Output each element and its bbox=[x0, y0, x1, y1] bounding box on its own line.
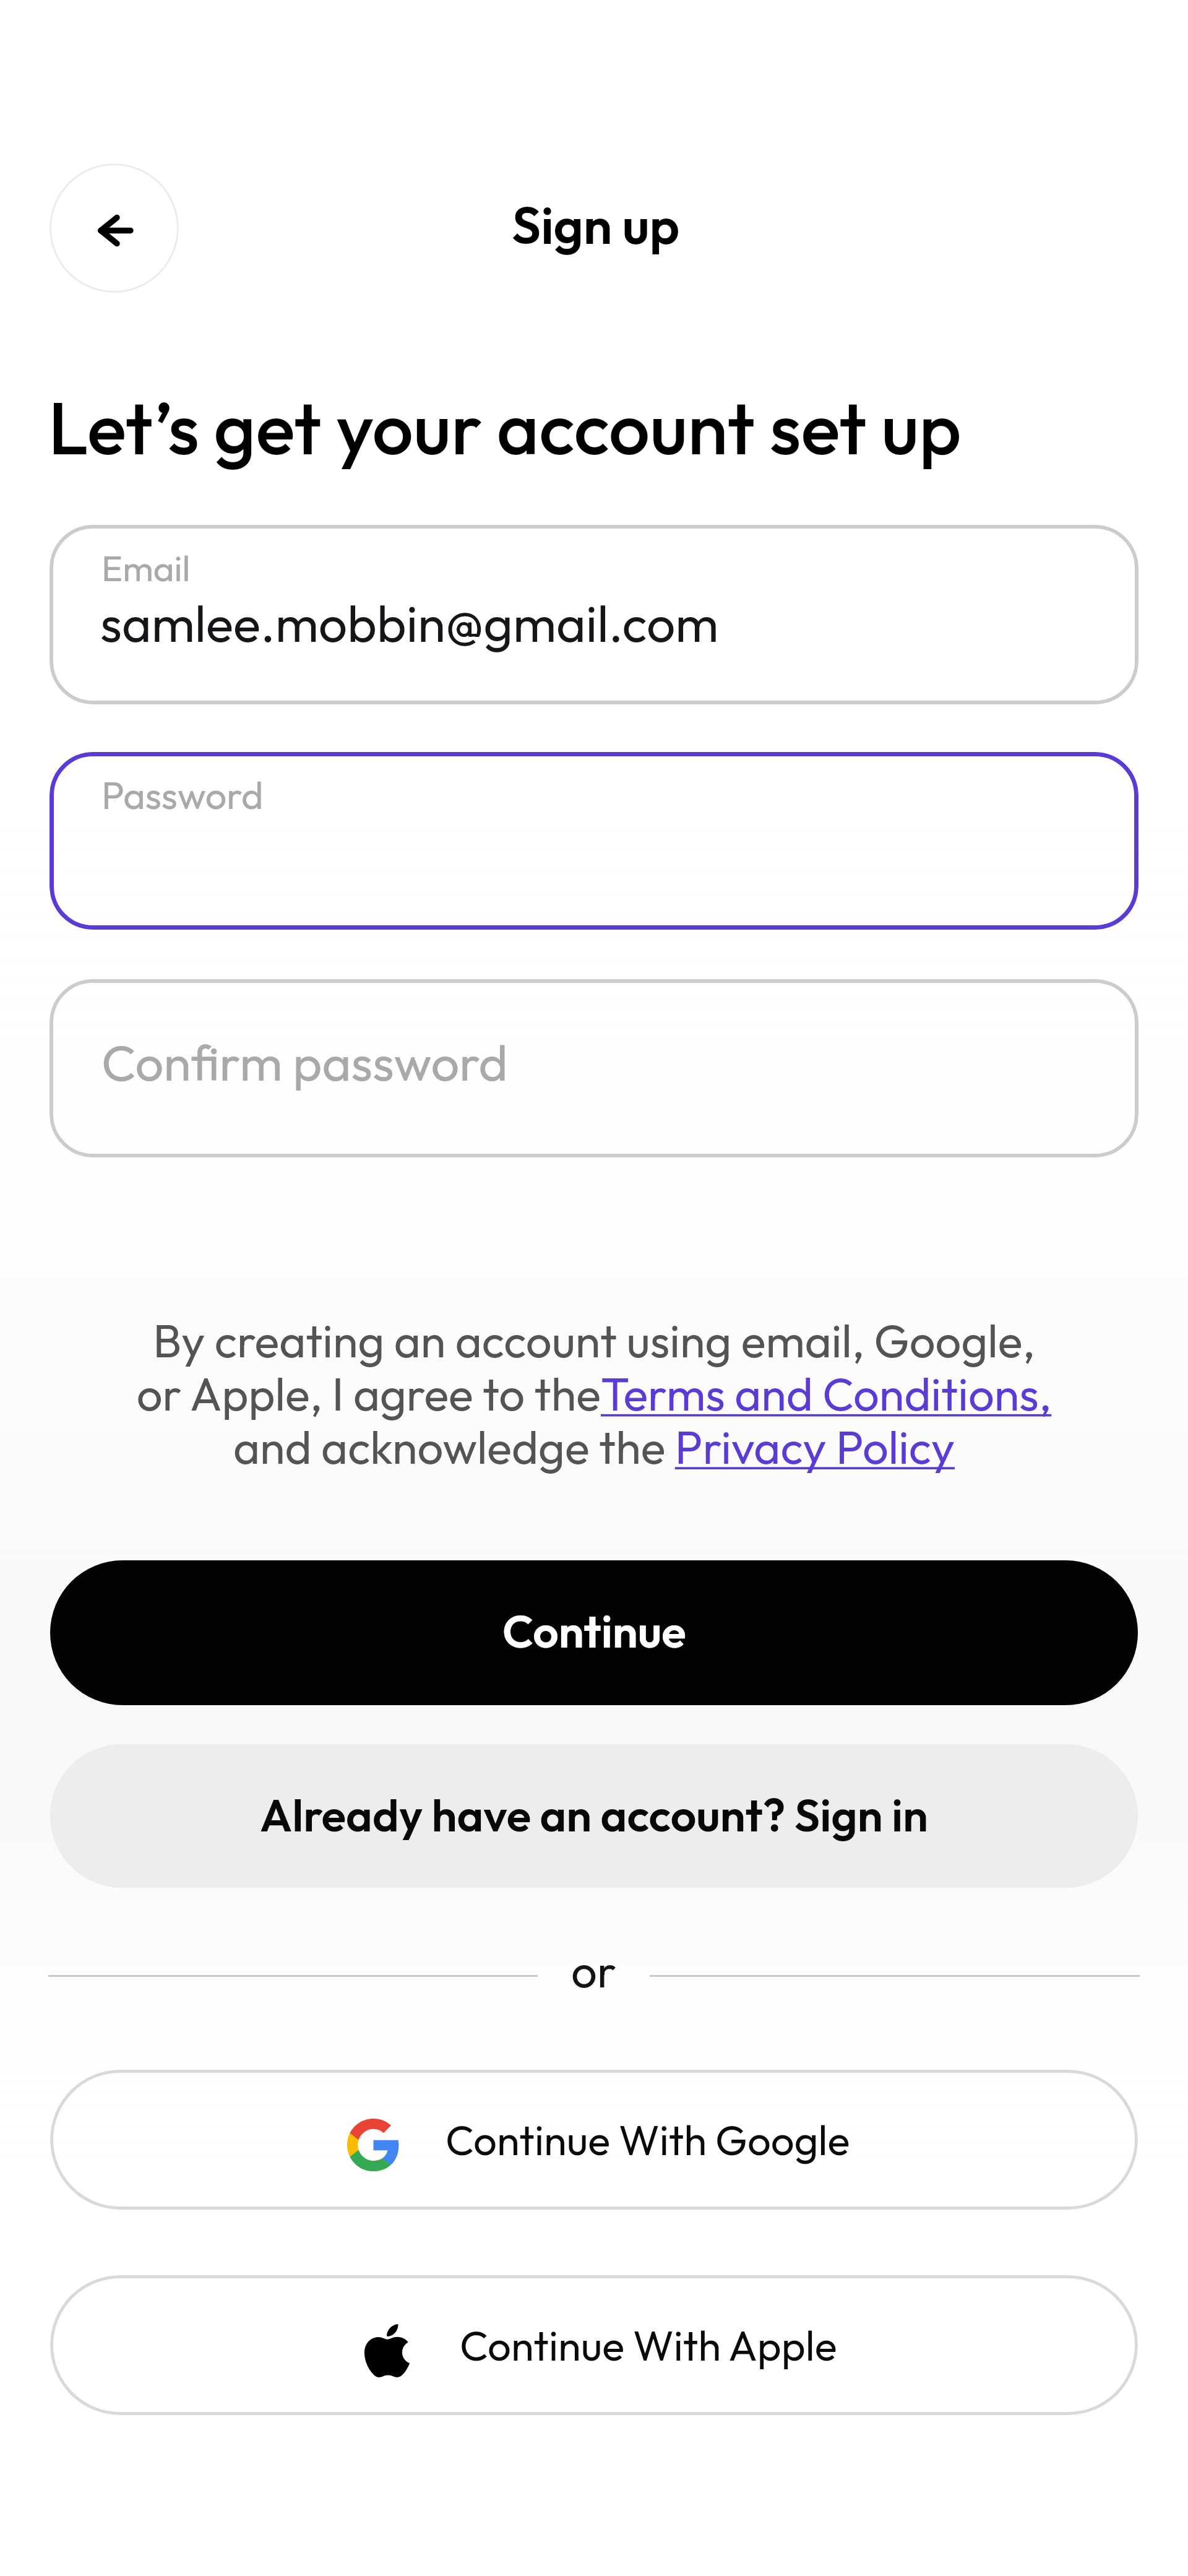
staticText: Let’s get your account set up bbox=[48, 381, 962, 473]
button[interactable]: Continue bbox=[50, 1560, 1138, 1705]
staticText: samlee.mobbin@gmail.com bbox=[100, 591, 719, 655]
button[interactable]: Continue With Apple bbox=[50, 2275, 1138, 2415]
button[interactable]: Back bbox=[49, 163, 179, 293]
button[interactable]: Email bbox=[49, 525, 1138, 704]
button[interactable]: Already have an account? Sign in bbox=[50, 1744, 1138, 1888]
staticText: Confirm password bbox=[101, 1031, 508, 1094]
staticText: Continue With Google bbox=[445, 2114, 850, 2166]
staticText: Continue bbox=[502, 1602, 686, 1659]
staticText: Continue With Apple bbox=[460, 2319, 837, 2371]
button[interactable]: Continue With Google bbox=[50, 2070, 1138, 2210]
button[interactable]: Password bbox=[49, 752, 1138, 930]
staticText: Password bbox=[101, 771, 264, 819]
button[interactable]: Confirm password bbox=[49, 979, 1138, 1157]
staticText: or bbox=[571, 1942, 616, 1996]
staticText: Email bbox=[101, 545, 191, 590]
staticText: Sign up bbox=[512, 192, 680, 257]
staticText: By creating an account using email, Goog… bbox=[25, 1312, 1163, 1476]
staticText: Already have an account? Sign in bbox=[260, 1786, 929, 1843]
